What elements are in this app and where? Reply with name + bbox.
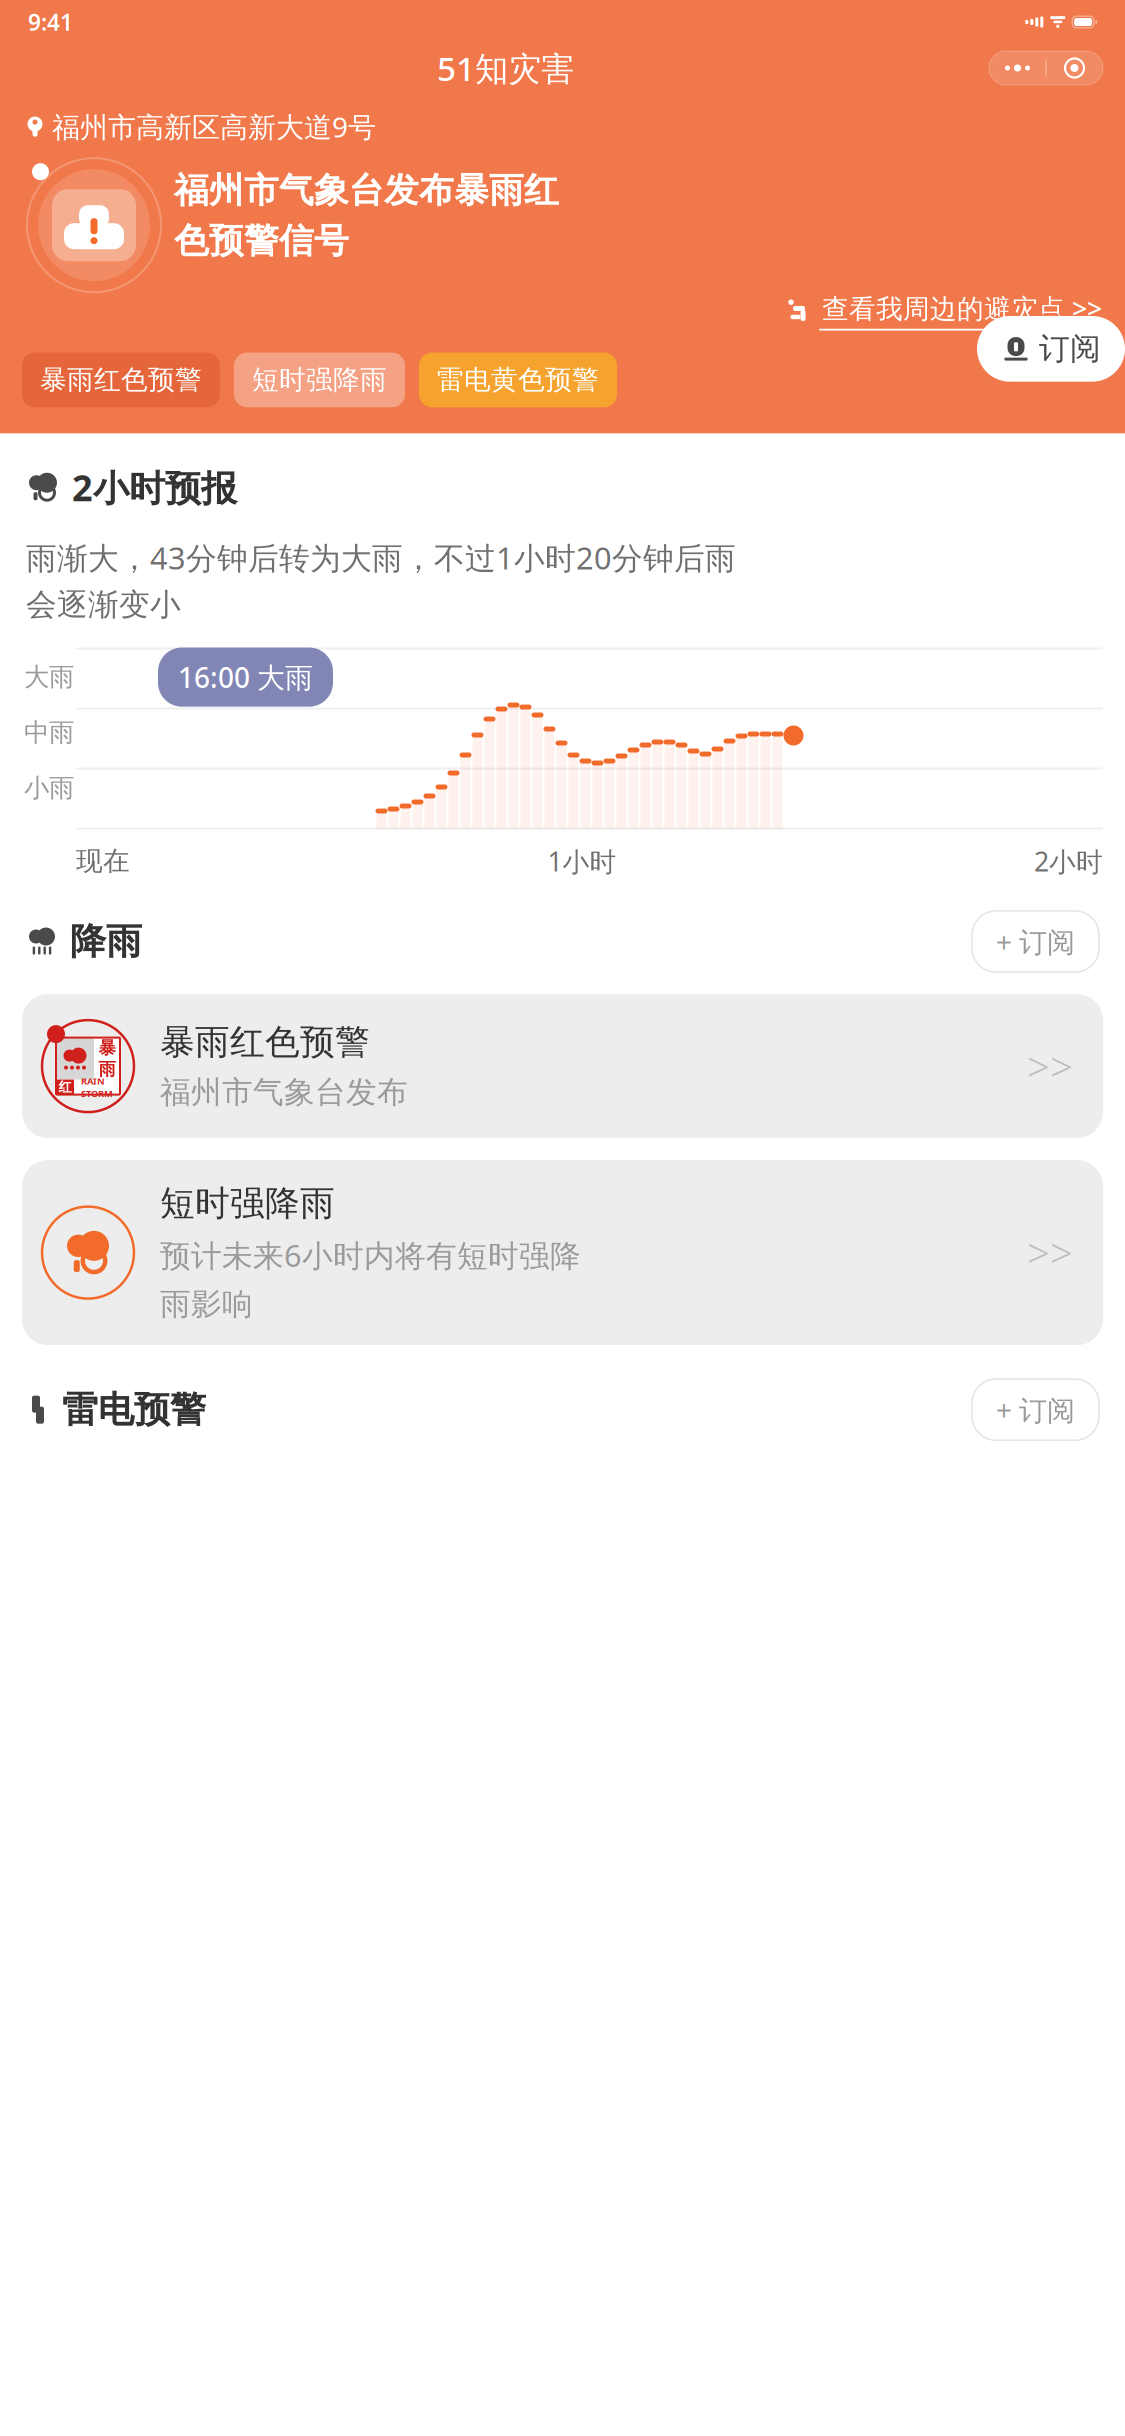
staticText: 51知灾害 [437, 46, 574, 90]
button[interactable]: + 订阅 [972, 1379, 1099, 1440]
staticText: 16:00 大雨 [178, 658, 313, 696]
staticText: >> [1027, 1039, 1073, 1093]
staticText: 小雨 [24, 772, 74, 803]
button[interactable]: 雷电黄色预警 [419, 353, 617, 407]
button[interactable]: 短时强降雨 [234, 353, 405, 407]
staticText: + 订阅 [996, 1391, 1075, 1428]
button[interactable]: 暴雨红色预警 [22, 353, 220, 407]
staticText: >> [1027, 1226, 1073, 1279]
staticText: 降雨 [70, 919, 142, 964]
staticText: + 订阅 [996, 923, 1075, 960]
staticText: 大雨 [24, 661, 74, 693]
button[interactable]: + 订阅 [972, 911, 1099, 972]
staticText: 红 [58, 1079, 71, 1095]
button[interactable]: 短时强降雨 [22, 1160, 1103, 1345]
staticText: 短时强降雨 [160, 1182, 335, 1225]
staticText: 色预警信号 [174, 220, 349, 262]
staticText: 雨 [98, 1059, 115, 1080]
staticText: 福州市气象台发布暴雨红 [174, 169, 559, 212]
staticText: 9:41 [28, 7, 73, 37]
staticText: 短时强降雨 [252, 364, 387, 396]
staticText: 雨影响 [160, 1285, 253, 1323]
staticText: 雨渐大，43分钟后转为大雨，不过1小时20分钟后雨 [26, 537, 736, 578]
staticText: RAIN STORM [81, 1075, 113, 1099]
staticText: 现在 [76, 845, 130, 878]
staticText: 暴 [98, 1037, 115, 1059]
staticText: 暴雨红色预警 [40, 364, 202, 396]
staticText: 2小时 [1034, 843, 1103, 879]
staticText: 会逐渐变小 [26, 586, 181, 623]
staticText: 订阅 [1039, 330, 1101, 368]
staticText: 1小时 [547, 843, 616, 879]
staticText: 预计未来6小时内将有短时强降 [160, 1235, 581, 1275]
staticText: 暴雨红色预警 [160, 1021, 370, 1064]
staticText: 2小时预报 [72, 463, 237, 511]
staticText: 中雨 [24, 717, 74, 748]
staticText: 雷电预警 [62, 1388, 206, 1432]
staticText: 福州市气象台发布 [160, 1074, 408, 1111]
button[interactable]: 更多 [989, 51, 1045, 85]
button[interactable]: 关闭 [1046, 51, 1102, 85]
button[interactable]: 16:00 大雨 [158, 647, 333, 707]
button[interactable]: 查看我周边的避灾点 >> [174, 270, 1105, 330]
staticText: 福州市高新区高新大道9号 [52, 108, 376, 145]
staticText: 查看我周边的避灾点 >> [822, 290, 1102, 326]
button[interactable]: 订阅 [977, 316, 1125, 382]
staticText: 雷电黄色预警 [437, 364, 599, 396]
button[interactable]: 暴 [22, 994, 1103, 1138]
